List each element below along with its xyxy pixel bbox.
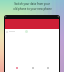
button[interactable]: Profile: [43, 64, 52, 72]
button[interactable]: Search: [28, 64, 37, 72]
button[interactable]: Home: [12, 64, 21, 72]
button[interactable]: [5, 29, 59, 34]
staticText: old phone to your new phone: [13, 7, 52, 11]
staticText: Switch your data from your: [14, 2, 50, 6]
